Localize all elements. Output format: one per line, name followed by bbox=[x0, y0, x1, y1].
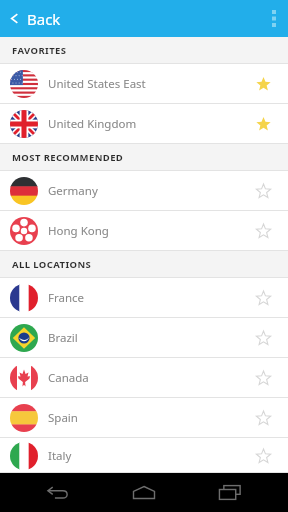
button[interactable]: Spain bbox=[0, 398, 288, 438]
staticText: ALL LOCATIONS bbox=[12, 258, 92, 271]
button[interactable]: Add to favorites bbox=[248, 403, 278, 433]
button[interactable]: Add to favorites bbox=[248, 441, 278, 471]
button[interactable]: Italy bbox=[0, 438, 288, 473]
button[interactable]: Brazil bbox=[0, 318, 288, 358]
button[interactable]: Recent apps bbox=[202, 473, 258, 512]
staticText: MOST RECOMMENDED bbox=[12, 151, 124, 164]
button[interactable]: Back bbox=[30, 473, 86, 512]
button[interactable]: Add to favorites bbox=[248, 216, 278, 246]
button[interactable]: United States East bbox=[0, 64, 288, 104]
button[interactable]: Remove from favorites bbox=[248, 69, 278, 99]
staticText: Canada bbox=[48, 370, 89, 386]
staticText: France bbox=[48, 290, 85, 306]
button[interactable]: More options bbox=[260, 0, 288, 37]
button[interactable]: Add to favorites bbox=[248, 323, 278, 353]
button[interactable]: Canada bbox=[0, 358, 288, 398]
staticText: Hong Kong bbox=[48, 223, 109, 239]
button[interactable]: Hong Kong bbox=[0, 211, 288, 251]
button[interactable]: France bbox=[0, 278, 288, 318]
staticText: Italy bbox=[48, 448, 72, 464]
button[interactable]: United Kingdom bbox=[0, 104, 288, 144]
button[interactable]: Back bbox=[0, 0, 71, 37]
staticText: Back bbox=[27, 9, 61, 29]
staticText: Brazil bbox=[48, 330, 78, 346]
button[interactable]: Home bbox=[116, 473, 172, 512]
button[interactable]: Remove from favorites bbox=[248, 109, 278, 139]
staticText: Germany bbox=[48, 183, 98, 199]
button[interactable]: Add to favorites bbox=[248, 283, 278, 313]
staticText: Spain bbox=[48, 410, 78, 426]
button[interactable]: Germany bbox=[0, 171, 288, 211]
button[interactable]: Add to favorites bbox=[248, 176, 278, 206]
staticText: FAVORITES bbox=[12, 44, 67, 57]
button[interactable]: Add to favorites bbox=[248, 363, 278, 393]
staticText: United States East bbox=[48, 76, 146, 92]
staticText: United Kingdom bbox=[48, 116, 137, 132]
